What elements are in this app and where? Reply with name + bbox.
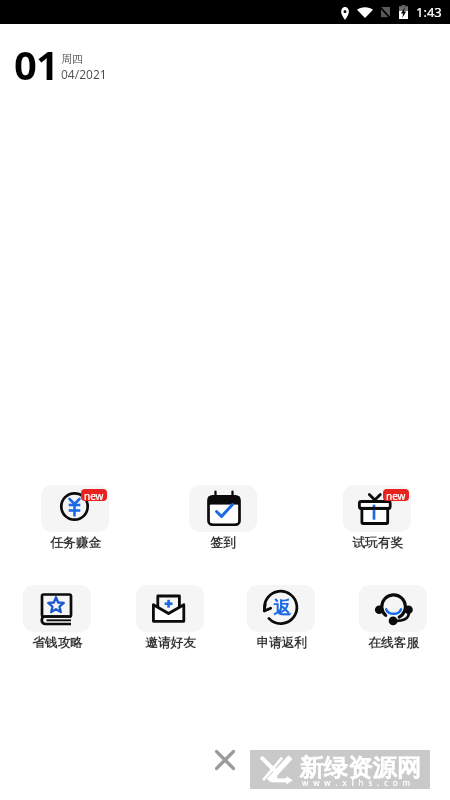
staticText: 周四 <box>61 52 83 66</box>
button[interactable]: 邀请好友 <box>136 585 204 651</box>
staticText: 任务赚金 <box>50 535 101 551</box>
staticText: 试玩有奖 <box>352 535 403 551</box>
staticText: 在线客服 <box>368 635 419 651</box>
staticText: 返 <box>273 597 291 620</box>
button[interactable]: 签到 <box>189 485 257 551</box>
staticText: w w w . x l h s . c o m <box>302 777 412 788</box>
button[interactable]: 省钱攻略 <box>23 585 91 651</box>
button[interactable]: new <box>41 485 109 551</box>
staticText: 1:43 <box>416 3 442 21</box>
staticText: 邀请好友 <box>145 635 196 651</box>
staticText: new <box>84 489 104 501</box>
staticText: 04/2021 <box>61 66 107 82</box>
button[interactable]: Close <box>208 743 242 777</box>
staticText: 申请返利 <box>256 635 307 651</box>
staticText: 省钱攻略 <box>32 635 83 651</box>
staticText: 签到 <box>210 535 236 551</box>
button[interactable]: 返 <box>247 585 315 651</box>
staticText: new <box>386 489 406 501</box>
staticText: 新绿资源网 <box>299 753 421 783</box>
staticText: 01 <box>14 37 59 91</box>
button[interactable]: 在线客服 <box>359 585 427 651</box>
button[interactable]: new <box>343 485 411 551</box>
